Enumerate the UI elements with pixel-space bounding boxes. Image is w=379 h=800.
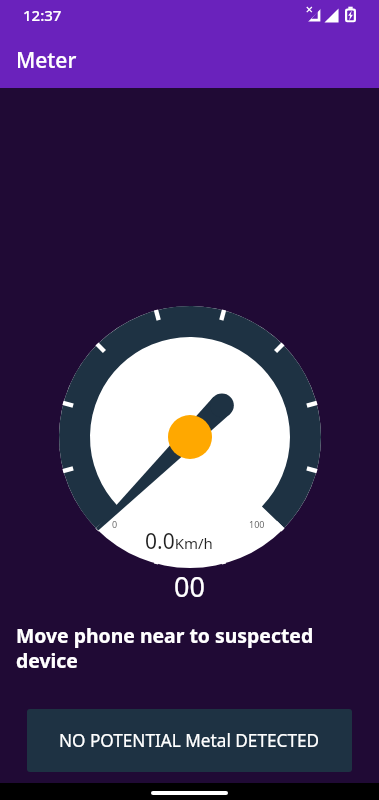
staticText: NO POTENTIAL Metal DETECTED [59,729,320,752]
other: No signal [306,7,321,22]
button[interactable]: NO POTENTIAL Metal DETECTED [27,709,352,772]
staticText: 00 [0,568,379,605]
staticText: 100 [249,518,265,530]
staticText: 0 [112,518,118,530]
other: Battery [345,6,356,23]
staticText: 12:37 [23,5,62,25]
other: Signal strength [324,8,339,23]
staticText: Move phone near to suspected device [16,622,367,673]
staticText: 0.0Km/h [145,527,213,556]
staticText: Meter [16,46,77,75]
